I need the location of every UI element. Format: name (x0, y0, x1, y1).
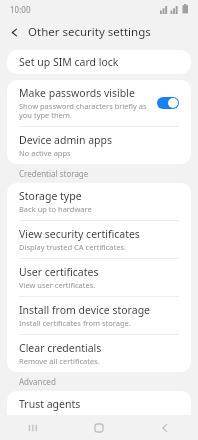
staticText: Back up to hardware (19, 204, 92, 214)
staticText: Install certificates from storage. (19, 318, 131, 328)
button[interactable]: User certificates (7, 259, 191, 296)
staticText: Credential storage (19, 168, 89, 179)
staticText: 10:00 (10, 4, 31, 15)
button[interactable]: Make passwords visible toggle (157, 97, 179, 109)
staticText: Set up SIM card lock (19, 55, 119, 69)
button[interactable]: Back (0, 18, 28, 46)
button[interactable]: Storage type (7, 183, 191, 220)
button[interactable]: Install from device storage (7, 297, 191, 334)
staticText: Display trusted CA certificates. (19, 242, 126, 252)
button[interactable]: Home (66, 415, 132, 440)
staticText: Trust agents (19, 397, 81, 411)
staticText: Clear credentials (19, 341, 102, 355)
button[interactable]: View security certificates (7, 221, 191, 258)
button[interactable]: Device admin apps (7, 127, 191, 164)
button[interactable]: Back (132, 415, 198, 440)
staticText: User certificates (19, 265, 99, 279)
staticText: Storage type (19, 189, 82, 203)
staticText: Advanced (19, 376, 56, 387)
staticText: View security certificates (19, 227, 140, 241)
staticText: Perform selected actions when trusted de… (19, 412, 179, 431)
staticText: Remove all certificates. (19, 356, 100, 366)
staticText: Make passwords visible (19, 86, 135, 100)
staticText: Install from device storage (19, 303, 151, 317)
staticText: Device admin apps (19, 133, 113, 147)
button[interactable]: Clear credentials (7, 335, 191, 372)
staticText: No active apps (19, 148, 71, 158)
button[interactable]: Set up SIM card lock (7, 50, 191, 74)
button[interactable]: Recent apps (0, 415, 66, 440)
staticText: View user certificates. (19, 280, 96, 290)
button[interactable]: Make passwords visible (7, 80, 191, 126)
button[interactable]: Trust agents (7, 391, 191, 437)
staticText: Other security settings (28, 24, 151, 40)
staticText: Show password characters briefly as you … (19, 101, 149, 120)
